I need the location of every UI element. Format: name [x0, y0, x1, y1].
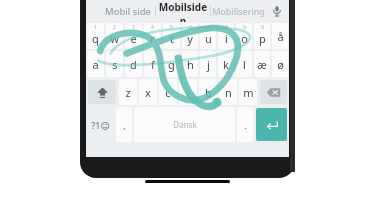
staticText: 6 — [189, 24, 192, 31]
button[interactable]: 9 — [236, 23, 252, 49]
staticText: , — [123, 119, 126, 131]
staticText: j — [207, 57, 210, 72]
button[interactable]: j — [200, 51, 216, 77]
staticText: k — [223, 57, 229, 72]
staticText: 7 — [207, 24, 210, 31]
button[interactable]: 8 — [218, 23, 234, 49]
button[interactable]: Dansk — [134, 107, 235, 142]
staticText: Dansk — [173, 119, 197, 130]
staticText: y — [187, 31, 193, 46]
button[interactable]: Mobil side — [100, 0, 155, 22]
button[interactable]: h — [182, 51, 198, 77]
staticText: 5 — [170, 24, 173, 31]
staticText: 2 — [113, 24, 116, 31]
button[interactable]: 5 — [163, 23, 180, 49]
button[interactable]: k — [218, 51, 234, 77]
button[interactable]: n — [219, 79, 237, 105]
button[interactable]: s — [106, 51, 123, 77]
staticText: b — [205, 85, 212, 100]
staticText: s — [112, 57, 118, 72]
staticText: o — [241, 31, 248, 46]
staticText: x — [145, 85, 151, 100]
staticText: v — [185, 85, 191, 100]
button[interactable]: . — [237, 107, 253, 142]
button[interactable]: Enter — [256, 108, 287, 141]
button[interactable]: v — [179, 79, 197, 105]
staticText: z — [125, 85, 131, 100]
button[interactable]: ø — [272, 51, 288, 77]
button[interactable]: m — [239, 79, 257, 105]
staticText: q — [92, 31, 99, 46]
staticText: å — [277, 29, 284, 44]
staticText: Mobil side — [105, 5, 151, 18]
staticText: d — [130, 57, 137, 72]
staticText: w — [110, 31, 119, 46]
staticText: 9 — [243, 24, 246, 31]
button[interactable]: l — [236, 51, 252, 77]
staticText: g — [168, 57, 175, 72]
button[interactable]: 6 — [182, 23, 198, 49]
staticText: p — [259, 31, 266, 46]
staticText: . — [244, 119, 247, 131]
staticText: n — [225, 85, 232, 100]
staticText: f — [151, 57, 155, 72]
button[interactable]: b — [199, 79, 217, 105]
button[interactable]: c — [159, 79, 177, 105]
button[interactable]: Voice input — [265, 0, 289, 22]
button[interactable]: 4 — [144, 23, 161, 49]
button[interactable]: f — [144, 51, 161, 77]
staticText: 3 — [132, 24, 135, 31]
button[interactable]: g — [163, 51, 180, 77]
button[interactable]: 1 — [87, 23, 104, 49]
button[interactable]: 2 — [106, 23, 123, 49]
button[interactable]: æ — [254, 51, 270, 77]
staticText: c — [165, 85, 171, 100]
staticText: m — [243, 85, 254, 100]
staticText: 8 — [225, 24, 228, 31]
button[interactable]: ?1☺ — [87, 107, 114, 142]
button[interactable]: a — [87, 51, 104, 77]
staticText: r — [150, 31, 155, 46]
button[interactable]: Key — [88, 80, 116, 104]
staticText: ø — [277, 57, 284, 72]
staticText: t — [170, 31, 174, 46]
staticText: 1 — [94, 24, 97, 31]
staticText: Mobilsiden — [156, 0, 210, 22]
button[interactable]: 3 — [125, 23, 142, 49]
staticText: ?1☺ — [91, 119, 110, 131]
button[interactable]: d — [125, 51, 142, 77]
staticText: e — [130, 31, 137, 46]
button[interactable]: z — [119, 79, 137, 105]
button[interactable]: å — [272, 23, 288, 49]
staticText: 0 — [261, 24, 264, 31]
button[interactable]: 7 — [200, 23, 216, 49]
staticText: æ — [257, 57, 267, 72]
staticText: 4 — [151, 24, 154, 31]
staticText: h — [187, 57, 194, 72]
button[interactable]: , — [116, 107, 132, 142]
staticText: l — [243, 57, 246, 72]
staticText: a — [92, 57, 99, 72]
button[interactable]: 0 — [254, 23, 270, 49]
button[interactable]: Mobilsiden — [156, 0, 210, 22]
staticText: Mobilisering — [212, 5, 265, 17]
staticText: i — [225, 31, 228, 46]
staticText: u — [205, 31, 212, 46]
button[interactable]: x — [139, 79, 157, 105]
button[interactable]: Mobilisering — [211, 0, 265, 22]
button[interactable]: Key — [260, 80, 287, 104]
